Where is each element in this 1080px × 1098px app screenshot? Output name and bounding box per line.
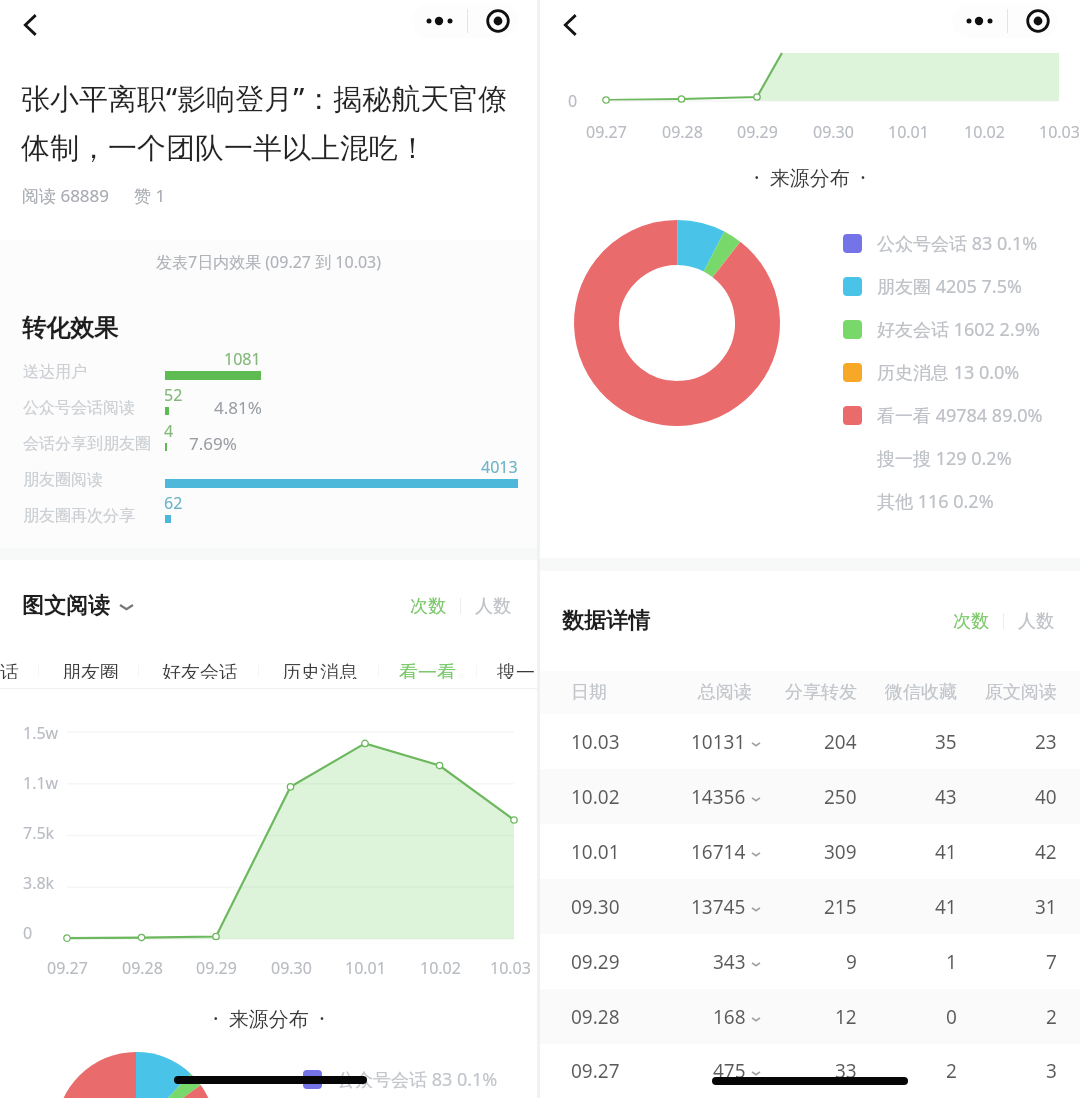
staticText: 历史消息 13 0.0%	[877, 360, 1020, 385]
button[interactable]: 人数	[469, 587, 517, 626]
staticText: 朋友圈再次分享	[23, 506, 135, 526]
staticText: 10.03	[490, 957, 531, 979]
button[interactable]: 看一看	[399, 652, 456, 688]
staticText: 40	[1035, 784, 1057, 810]
button[interactable]: 09.30	[540, 879, 1080, 934]
staticText: 43	[935, 784, 957, 810]
button[interactable]: More options	[954, 4, 1004, 38]
staticText: 搜一搜 129 0.2%	[877, 446, 1012, 471]
button[interactable]: 看一看 49784 89.0%	[843, 394, 1043, 437]
button[interactable]: 09.28	[540, 989, 1080, 1044]
staticText: 送达用户	[23, 362, 87, 382]
staticText: 10.01	[888, 121, 929, 143]
staticText: 会话分享到朋友圈	[23, 434, 151, 454]
button[interactable]: 10.01	[540, 824, 1080, 879]
staticText: 31	[1035, 894, 1057, 920]
staticText: 09.27	[571, 1058, 620, 1084]
staticText: 数据详情	[562, 607, 650, 635]
staticText: 10.03	[571, 729, 620, 755]
staticText: 体制，一个团队一半以上混吃！	[21, 130, 427, 167]
staticText: 16714	[691, 839, 746, 865]
staticText: 33	[835, 1058, 857, 1084]
staticText: 人数	[1018, 610, 1054, 633]
staticText: 10.01	[571, 839, 620, 865]
staticText: 09.30	[571, 894, 620, 920]
staticText: 0	[23, 922, 33, 944]
staticText: 好友会话	[162, 661, 238, 679]
staticText: 次数	[410, 595, 446, 618]
staticText: 10131	[691, 729, 746, 755]
staticText: 41	[935, 894, 957, 920]
staticText: 10.02	[420, 957, 461, 979]
button[interactable]: 历史消息 13 0.0%	[843, 351, 1020, 394]
staticText: 朋友圈	[62, 661, 119, 679]
button[interactable]: Close	[1014, 4, 1058, 38]
staticText: 1	[946, 949, 957, 975]
staticText: 搜一	[497, 661, 535, 679]
staticText: 分享转发	[785, 681, 857, 704]
staticText: 发表7日内效果 (09.27 到 10.03)	[156, 251, 382, 273]
button[interactable]: 次数	[947, 602, 995, 641]
button[interactable]: 10.03	[540, 714, 1080, 769]
button[interactable]: More options	[414, 4, 464, 38]
button[interactable]: 好友会话 1602 2.9%	[843, 308, 1040, 351]
staticText: 看一看 49784 89.0%	[877, 403, 1043, 428]
staticText: 3.8k	[23, 872, 55, 894]
button[interactable]: Back	[9, 3, 53, 47]
button[interactable]: 次数	[404, 587, 452, 626]
staticText: 168	[713, 1004, 746, 1030]
button[interactable]: 话	[0, 652, 19, 688]
staticText: 09.30	[813, 121, 854, 143]
staticText: 朋友圈阅读	[23, 470, 103, 490]
staticText: 1081	[224, 348, 261, 370]
staticText: 343	[713, 949, 746, 975]
button[interactable]: 09.29	[540, 934, 1080, 989]
button[interactable]: 10.02	[540, 769, 1080, 824]
staticText: 公众号会话阅读	[23, 398, 135, 418]
staticText: 2	[946, 1058, 957, 1084]
staticText: 1.5w	[23, 722, 59, 744]
staticText: 赞 1	[134, 184, 166, 207]
button[interactable]: 搜一搜 129 0.2%	[843, 437, 1012, 480]
staticText: 历史消息	[282, 661, 358, 679]
staticText: 62	[164, 492, 183, 514]
staticText: 1.1w	[23, 772, 59, 794]
button[interactable]: 好友会话	[162, 652, 238, 688]
staticText: 4013	[481, 456, 518, 478]
staticText: 张小平离职“影响登月”：揭秘航天官僚	[21, 78, 508, 118]
button[interactable]: 朋友圈 4205 7.5%	[843, 265, 1022, 308]
staticText: 4	[164, 420, 174, 442]
staticText: 204	[824, 729, 857, 755]
staticText: 7	[1046, 949, 1057, 975]
staticText: 朋友圈 4205 7.5%	[877, 274, 1022, 299]
staticText: 话	[0, 661, 19, 679]
staticText: 转化效果	[22, 313, 118, 343]
staticText: 09.29	[196, 957, 237, 979]
staticText: · 来源分布 ·	[213, 1005, 325, 1032]
staticText: 2	[1046, 1004, 1057, 1030]
staticText: 4.81%	[214, 396, 262, 419]
button[interactable]: 人数	[1012, 602, 1060, 641]
button[interactable]: 搜一	[497, 652, 535, 688]
button[interactable]: 其他 116 0.2%	[843, 480, 994, 523]
staticText: 人数	[475, 595, 511, 618]
button[interactable]: 朋友圈	[62, 652, 119, 688]
staticText: 0	[568, 90, 578, 112]
staticText: 公众号会话 83 0.1%	[337, 1067, 498, 1092]
staticText: 09.27	[586, 121, 627, 143]
button[interactable]: 09.27	[540, 1044, 1080, 1098]
button[interactable]: Back	[549, 3, 593, 47]
staticText: 图文阅读	[22, 592, 110, 620]
staticText: 14356	[691, 784, 746, 810]
staticText: 09.27	[47, 957, 88, 979]
staticText: 好友会话 1602 2.9%	[877, 317, 1040, 342]
staticText: 总阅读	[698, 681, 752, 704]
button[interactable]: Close	[474, 4, 518, 38]
button[interactable]: 历史消息	[282, 652, 358, 688]
staticText: 10.01	[345, 957, 386, 979]
staticText: 35	[935, 729, 957, 755]
staticText: 09.29	[571, 949, 620, 975]
staticText: 原文阅读	[985, 681, 1057, 704]
staticText: 309	[824, 839, 857, 865]
button[interactable]: 公众号会话 83 0.1%	[843, 222, 1038, 265]
